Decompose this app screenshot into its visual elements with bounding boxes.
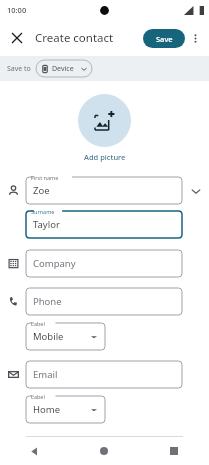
staticText: Save (156, 34, 173, 44)
button[interactable]: Device (36, 60, 92, 77)
staticText: Zoe (33, 184, 50, 197)
staticText: First name (31, 174, 59, 181)
staticText: Mobile (33, 330, 64, 343)
button[interactable]: Save (143, 29, 185, 48)
staticText: 10:00 (7, 5, 27, 15)
button[interactable]: Expand name fields (182, 177, 209, 204)
staticText: Add picture (84, 152, 126, 162)
staticText: Create contact (35, 30, 114, 46)
button[interactable]: Email (26, 361, 182, 388)
staticText: Device (52, 64, 74, 74)
button[interactable]: Close (6, 27, 28, 49)
staticText: Home (33, 403, 61, 416)
button[interactable]: Recent apps (139, 437, 209, 465)
staticText: Company (33, 257, 76, 270)
staticText: Phone (33, 295, 62, 308)
staticText: Save to (7, 64, 31, 74)
button[interactable]: Add picture (78, 94, 131, 147)
staticText: Taylor (33, 218, 60, 231)
staticText: Email (33, 368, 58, 381)
staticText: Label (31, 393, 45, 400)
button[interactable]: First name (26, 177, 182, 204)
button[interactable]: Back (0, 437, 69, 465)
button[interactable]: Surname (26, 211, 182, 238)
button[interactable]: More options (185, 28, 205, 48)
staticText: Label (31, 320, 45, 327)
button[interactable]: Phone (26, 288, 182, 315)
staticText: Surname (31, 208, 55, 215)
button[interactable]: Company (26, 250, 182, 277)
button[interactable]: Label (26, 396, 105, 423)
button[interactable]: Label (26, 323, 105, 350)
button[interactable]: Home (69, 437, 139, 465)
